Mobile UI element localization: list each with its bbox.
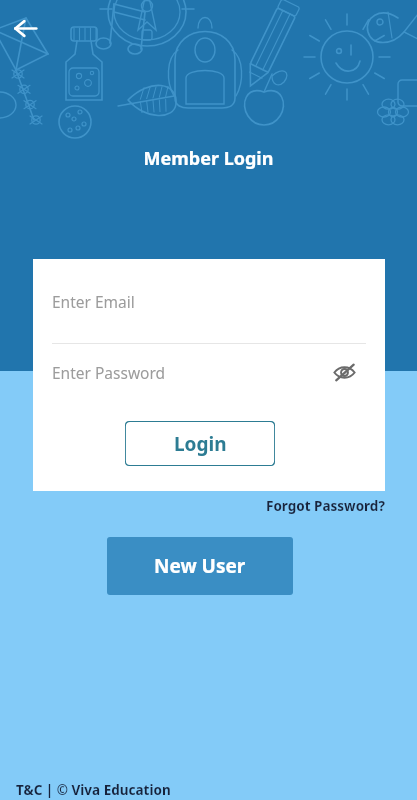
staticText: Enter Password xyxy=(52,362,166,383)
button[interactable]: Enter Password xyxy=(33,345,385,399)
staticText: New User xyxy=(154,553,246,579)
button[interactable]: Back xyxy=(5,8,45,48)
staticText: Forgot Password? xyxy=(266,497,385,515)
button[interactable]: Show password xyxy=(324,352,364,392)
button[interactable]: Forgot Password? xyxy=(225,494,385,518)
staticText: Member Login xyxy=(0,146,417,171)
staticText: Login xyxy=(174,431,227,457)
button[interactable]: Login xyxy=(125,421,275,466)
button[interactable]: New User xyxy=(107,537,293,595)
button[interactable]: Enter Email xyxy=(33,259,385,343)
staticText: Enter Email xyxy=(52,291,135,312)
staticText: T&C | © Viva Education xyxy=(16,781,171,799)
button[interactable]: T&C | © Viva Education xyxy=(16,779,171,800)
